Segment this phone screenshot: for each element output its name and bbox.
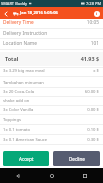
staticText: i xyxy=(96,11,98,17)
staticText: 0.00 $ xyxy=(87,107,99,113)
staticText: 3x Color Vanilla xyxy=(3,107,34,113)
staticText: 3x 0.1 American Sauce xyxy=(3,137,48,143)
staticText: Delivery Time xyxy=(3,19,34,26)
button[interactable]: Delivery Instruction xyxy=(0,29,103,38)
staticText: Total xyxy=(5,55,19,62)
button[interactable]: 3x 20 Coca-Cola xyxy=(0,87,103,96)
staticText: 10:05 xyxy=(86,19,99,26)
button[interactable]: Total xyxy=(0,54,103,63)
staticText: 1x 0.1 tomato xyxy=(3,127,31,133)
staticText: SMART Buddy xyxy=(1,1,28,6)
staticText: x $ xyxy=(93,68,99,74)
button[interactable]: Accept xyxy=(3,151,49,166)
staticText: 0.30 $ xyxy=(87,137,99,143)
staticText: 0.10 $ xyxy=(87,127,99,133)
staticText: Accept xyxy=(19,156,34,162)
staticText: 41.93 $ xyxy=(80,55,99,62)
button[interactable]: 1x 0.1 tomato xyxy=(0,125,103,134)
staticText: 3x 20 Coca-Cola xyxy=(3,89,35,95)
staticText: Toppings xyxy=(3,117,21,123)
staticText: 3x 3.29 big max meal xyxy=(3,68,45,74)
button[interactable]: Delivery Time xyxy=(0,18,103,27)
staticText: 60.00 $ xyxy=(84,89,99,95)
button[interactable]: Location Name xyxy=(0,39,103,48)
button[interactable]: 3x 3.29 big max meal xyxy=(0,66,103,75)
button[interactable]: Decline xyxy=(53,151,100,166)
button[interactable]: Back xyxy=(1,9,10,18)
staticText: Tambahan minuman xyxy=(3,80,44,86)
button[interactable]: Tambahan minuman xyxy=(0,78,103,87)
button[interactable]: Home xyxy=(47,171,57,181)
staticText: Location Name xyxy=(3,40,38,47)
button[interactable]: Info xyxy=(92,9,101,18)
button[interactable]: Toppings xyxy=(0,115,103,124)
button[interactable]: Back xyxy=(13,171,23,181)
staticText: 101 xyxy=(90,40,99,47)
staticText: shake add on xyxy=(3,98,30,104)
staticText: 7:28 PM xyxy=(86,1,102,6)
button[interactable]: 3x 0.1 American Sauce xyxy=(0,135,103,144)
button[interactable]: 3x Color Vanilla xyxy=(0,105,103,114)
button[interactable]: Recents xyxy=(80,171,90,181)
staticText: Delivery Instruction xyxy=(3,30,48,37)
staticText: Decline xyxy=(69,156,85,162)
staticText: Jan 18,2016 5:05:06 xyxy=(20,10,58,16)
button[interactable]: shake add on xyxy=(0,96,103,105)
